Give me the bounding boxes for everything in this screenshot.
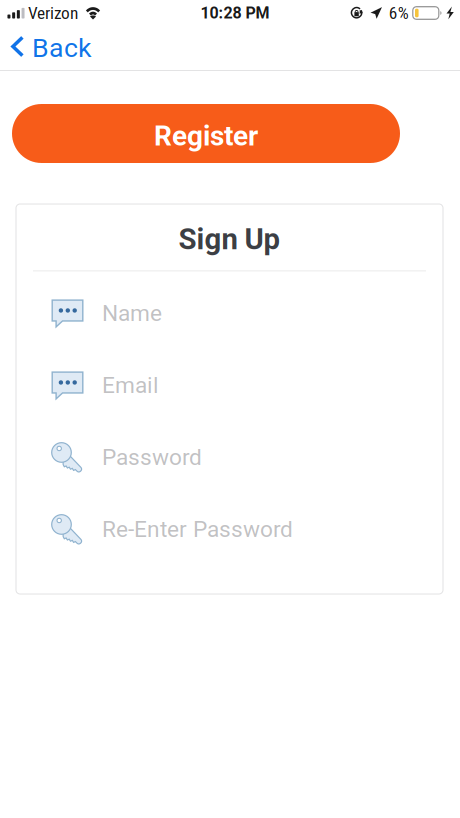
button[interactable]: Re-Enter Password: [16, 493, 443, 565]
staticText: Verizon: [28, 3, 78, 23]
button[interactable]: Back: [0, 25, 106, 71]
staticText: Re-Enter Password: [102, 516, 293, 543]
staticText: 6%: [389, 3, 409, 23]
button[interactable]: Name: [16, 277, 443, 349]
staticText: Sign Up: [178, 222, 280, 256]
staticText: Password: [102, 444, 202, 471]
button[interactable]: Register: [12, 104, 400, 163]
staticText: Register: [154, 120, 258, 152]
staticText: Back: [32, 32, 92, 64]
button[interactable]: Password: [16, 421, 443, 493]
staticText: Email: [102, 372, 159, 399]
staticText: 10:28 PM: [200, 4, 269, 22]
staticText: Name: [102, 300, 162, 327]
button[interactable]: Email: [16, 349, 443, 421]
